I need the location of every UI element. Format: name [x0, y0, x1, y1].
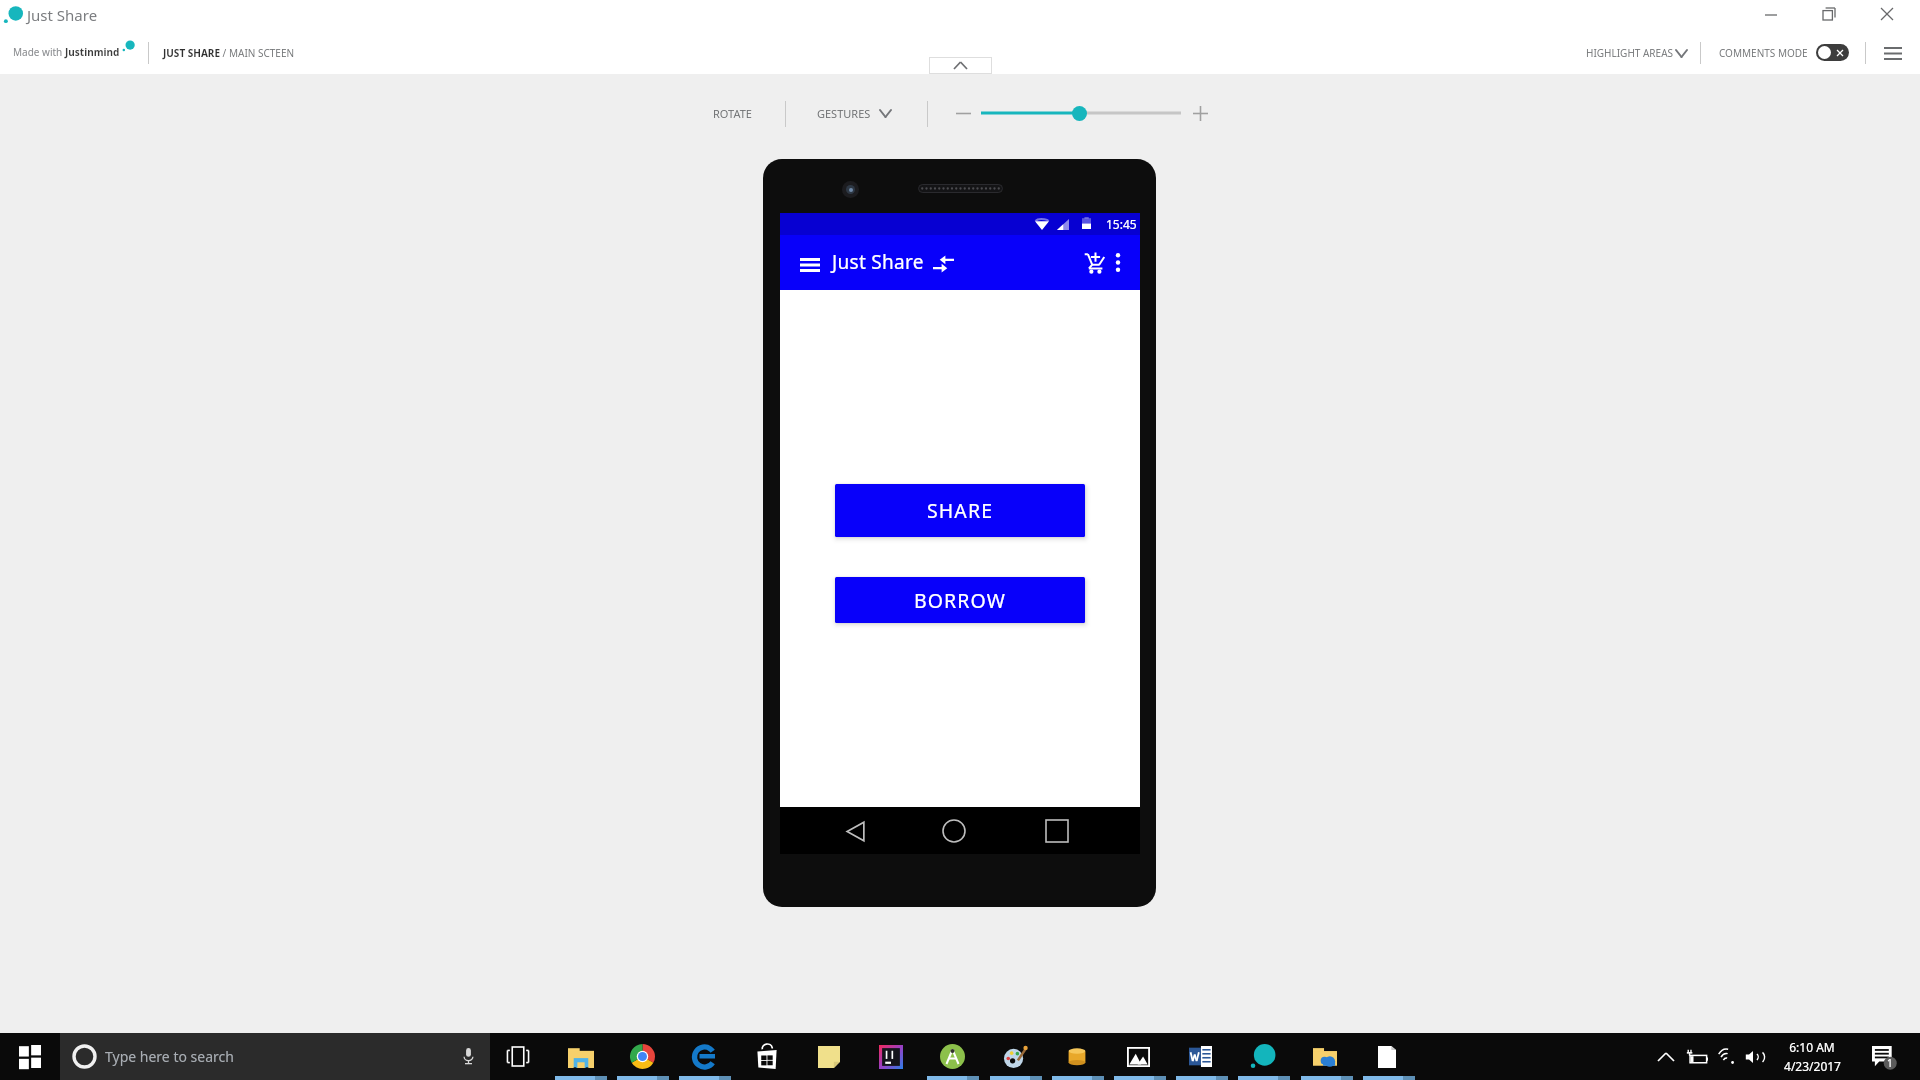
button[interactable]: Taskbar item [1056, 1033, 1097, 1080]
button[interactable]: Menu [1878, 40, 1908, 66]
button[interactable]: Taskbar item [1304, 1033, 1345, 1080]
staticText: 6:10 AM [1789, 1039, 1835, 1055]
button[interactable]: Battery [1682, 1033, 1710, 1080]
staticText: BORROW [914, 587, 1006, 614]
button[interactable]: Comments mode [1816, 44, 1849, 61]
button[interactable]: Close [1858, 0, 1916, 28]
button[interactable]: Taskbar item [808, 1033, 849, 1080]
staticText: COMMENTS MODE [1719, 46, 1808, 60]
staticText: SHARE [927, 497, 994, 524]
button[interactable]: GESTURES [817, 103, 891, 124]
button[interactable]: Taskbar item [684, 1033, 725, 1080]
button[interactable]: Notifications [1860, 1033, 1908, 1080]
button[interactable]: Minimize [1742, 0, 1800, 28]
staticText: Justinmind [65, 45, 120, 59]
button[interactable]: More options [1108, 247, 1128, 277]
button[interactable]: Maximize [1800, 0, 1858, 28]
staticText: GESTURES [817, 106, 871, 121]
staticText: 1 [1887, 1056, 1893, 1070]
button[interactable]: 6:10 AM [1772, 1033, 1852, 1080]
button[interactable]: Back [832, 808, 878, 854]
button[interactable]: Taskbar item [746, 1033, 787, 1080]
staticText: 4/23/2017 [1784, 1058, 1841, 1074]
button[interactable]: Home [931, 808, 977, 854]
button[interactable]: Zoom in [1192, 105, 1209, 122]
button[interactable]: Volume [1740, 1033, 1770, 1080]
staticText: 15:45 [1106, 216, 1137, 232]
button[interactable]: Taskbar item [994, 1033, 1035, 1080]
button[interactable]: Show hidden icons [1650, 1033, 1682, 1080]
button[interactable]: BORROW [835, 577, 1085, 623]
button[interactable]: Compare [930, 250, 956, 278]
button[interactable]: Recent apps [1034, 808, 1080, 854]
button[interactable]: ROTATE [713, 106, 752, 121]
button[interactable]: Taskbar item [870, 1033, 911, 1080]
button[interactable]: Open navigation menu [792, 249, 828, 281]
button[interactable]: Start [0, 1033, 60, 1080]
staticText: Made with [13, 45, 65, 59]
staticText: Just Share [27, 5, 98, 25]
button[interactable]: HIGHLIGHT AREAS [1586, 42, 1687, 64]
button[interactable]: Zoom out [955, 105, 972, 122]
button[interactable]: Network [1711, 1033, 1741, 1080]
button[interactable]: Taskbar item [1242, 1033, 1283, 1080]
button[interactable]: Taskbar item [932, 1033, 973, 1080]
staticText: JUST SHARE [163, 46, 220, 60]
button[interactable]: Type here to search [60, 1033, 490, 1080]
button[interactable]: Taskbar item [497, 1033, 538, 1080]
button[interactable]: Add to cart [1082, 247, 1108, 277]
button[interactable]: Taskbar item [1366, 1033, 1407, 1080]
button[interactable]: Taskbar item [1118, 1033, 1159, 1080]
button[interactable]: Collapse toolbar [929, 57, 992, 74]
staticText: Just Share [832, 249, 924, 275]
button[interactable]: Taskbar item [560, 1033, 601, 1080]
button[interactable]: Taskbar item [622, 1033, 663, 1080]
button[interactable]: Taskbar item [1180, 1033, 1221, 1080]
button[interactable]: Zoom level [1072, 106, 1087, 121]
staticText: Type here to search [105, 1047, 234, 1066]
staticText: / MAIN SCTEEN [220, 46, 295, 60]
button[interactable]: SHARE [835, 484, 1085, 537]
staticText: HIGHLIGHT AREAS [1586, 46, 1674, 60]
